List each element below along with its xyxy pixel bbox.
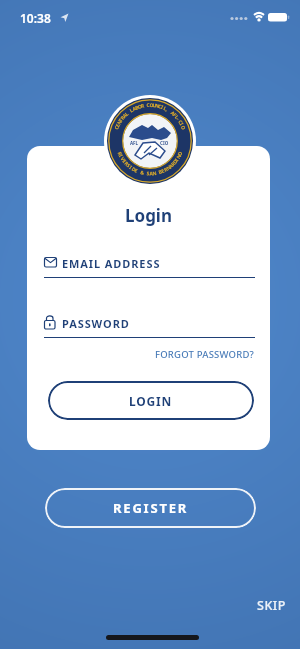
staticText: SKIP — [257, 597, 286, 614]
staticText: Login — [27, 204, 270, 227]
button[interactable]: EMAIL ADDRESS — [37, 246, 260, 282]
button[interactable]: PASSWORD — [37, 306, 260, 342]
button[interactable]: FORGOT PASSWORD? — [145, 344, 257, 364]
button[interactable]: REGISTER — [45, 488, 256, 528]
staticText: PASSWORD — [62, 316, 130, 331]
button[interactable]: LOGIN — [48, 381, 254, 420]
staticText: EMAIL ADDRESS — [62, 256, 161, 271]
staticText: REGISTER — [113, 499, 189, 517]
button[interactable]: SKIP — [246, 592, 296, 618]
staticText: FORGOT PASSWORD? — [155, 348, 255, 361]
staticText: LOGIN — [129, 393, 173, 409]
